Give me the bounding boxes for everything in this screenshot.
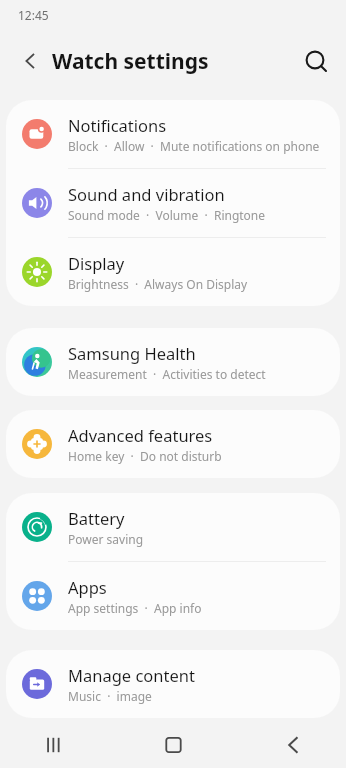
button[interactable]: Back — [231, 722, 346, 768]
button[interactable]: Manage content — [6, 650, 340, 718]
staticText: 12:45 — [18, 7, 49, 23]
button[interactable]: Search — [296, 41, 336, 81]
staticText: Measurement · Activities to detect — [68, 366, 266, 382]
staticText: Notifications — [68, 114, 167, 136]
button[interactable]: Notifications — [6, 100, 340, 169]
staticText: Sound mode · Volume · Ringtone — [68, 207, 266, 223]
staticText: Block · Allow · Mute notifications on ph… — [68, 138, 320, 154]
staticText: Advanced features — [68, 424, 213, 446]
staticText: App settings · App info — [68, 600, 202, 616]
staticText: Power saving — [68, 531, 144, 547]
button[interactable]: Apps — [6, 562, 340, 630]
staticText: Brightness · Always On Display — [68, 276, 248, 292]
button[interactable]: Back — [10, 41, 50, 81]
button[interactable]: Battery — [6, 493, 340, 562]
button[interactable]: Home — [116, 722, 231, 768]
button[interactable]: Sound and vibration — [6, 169, 340, 238]
button[interactable]: Advanced features — [6, 410, 340, 478]
staticText: Music · image — [68, 688, 152, 704]
staticText: Display — [68, 252, 125, 274]
staticText: Home key · Do not disturb — [68, 448, 222, 464]
staticText: Watch settings — [52, 47, 209, 76]
staticText: Manage content — [68, 664, 195, 686]
staticText: Battery — [68, 507, 125, 529]
staticText: Apps — [68, 576, 107, 598]
button[interactable]: Recents — [0, 722, 116, 768]
staticText: Sound and vibration — [68, 183, 225, 205]
staticText: Samsung Health — [68, 342, 196, 364]
button[interactable]: Samsung Health — [6, 328, 340, 396]
button[interactable]: Display — [6, 238, 340, 306]
